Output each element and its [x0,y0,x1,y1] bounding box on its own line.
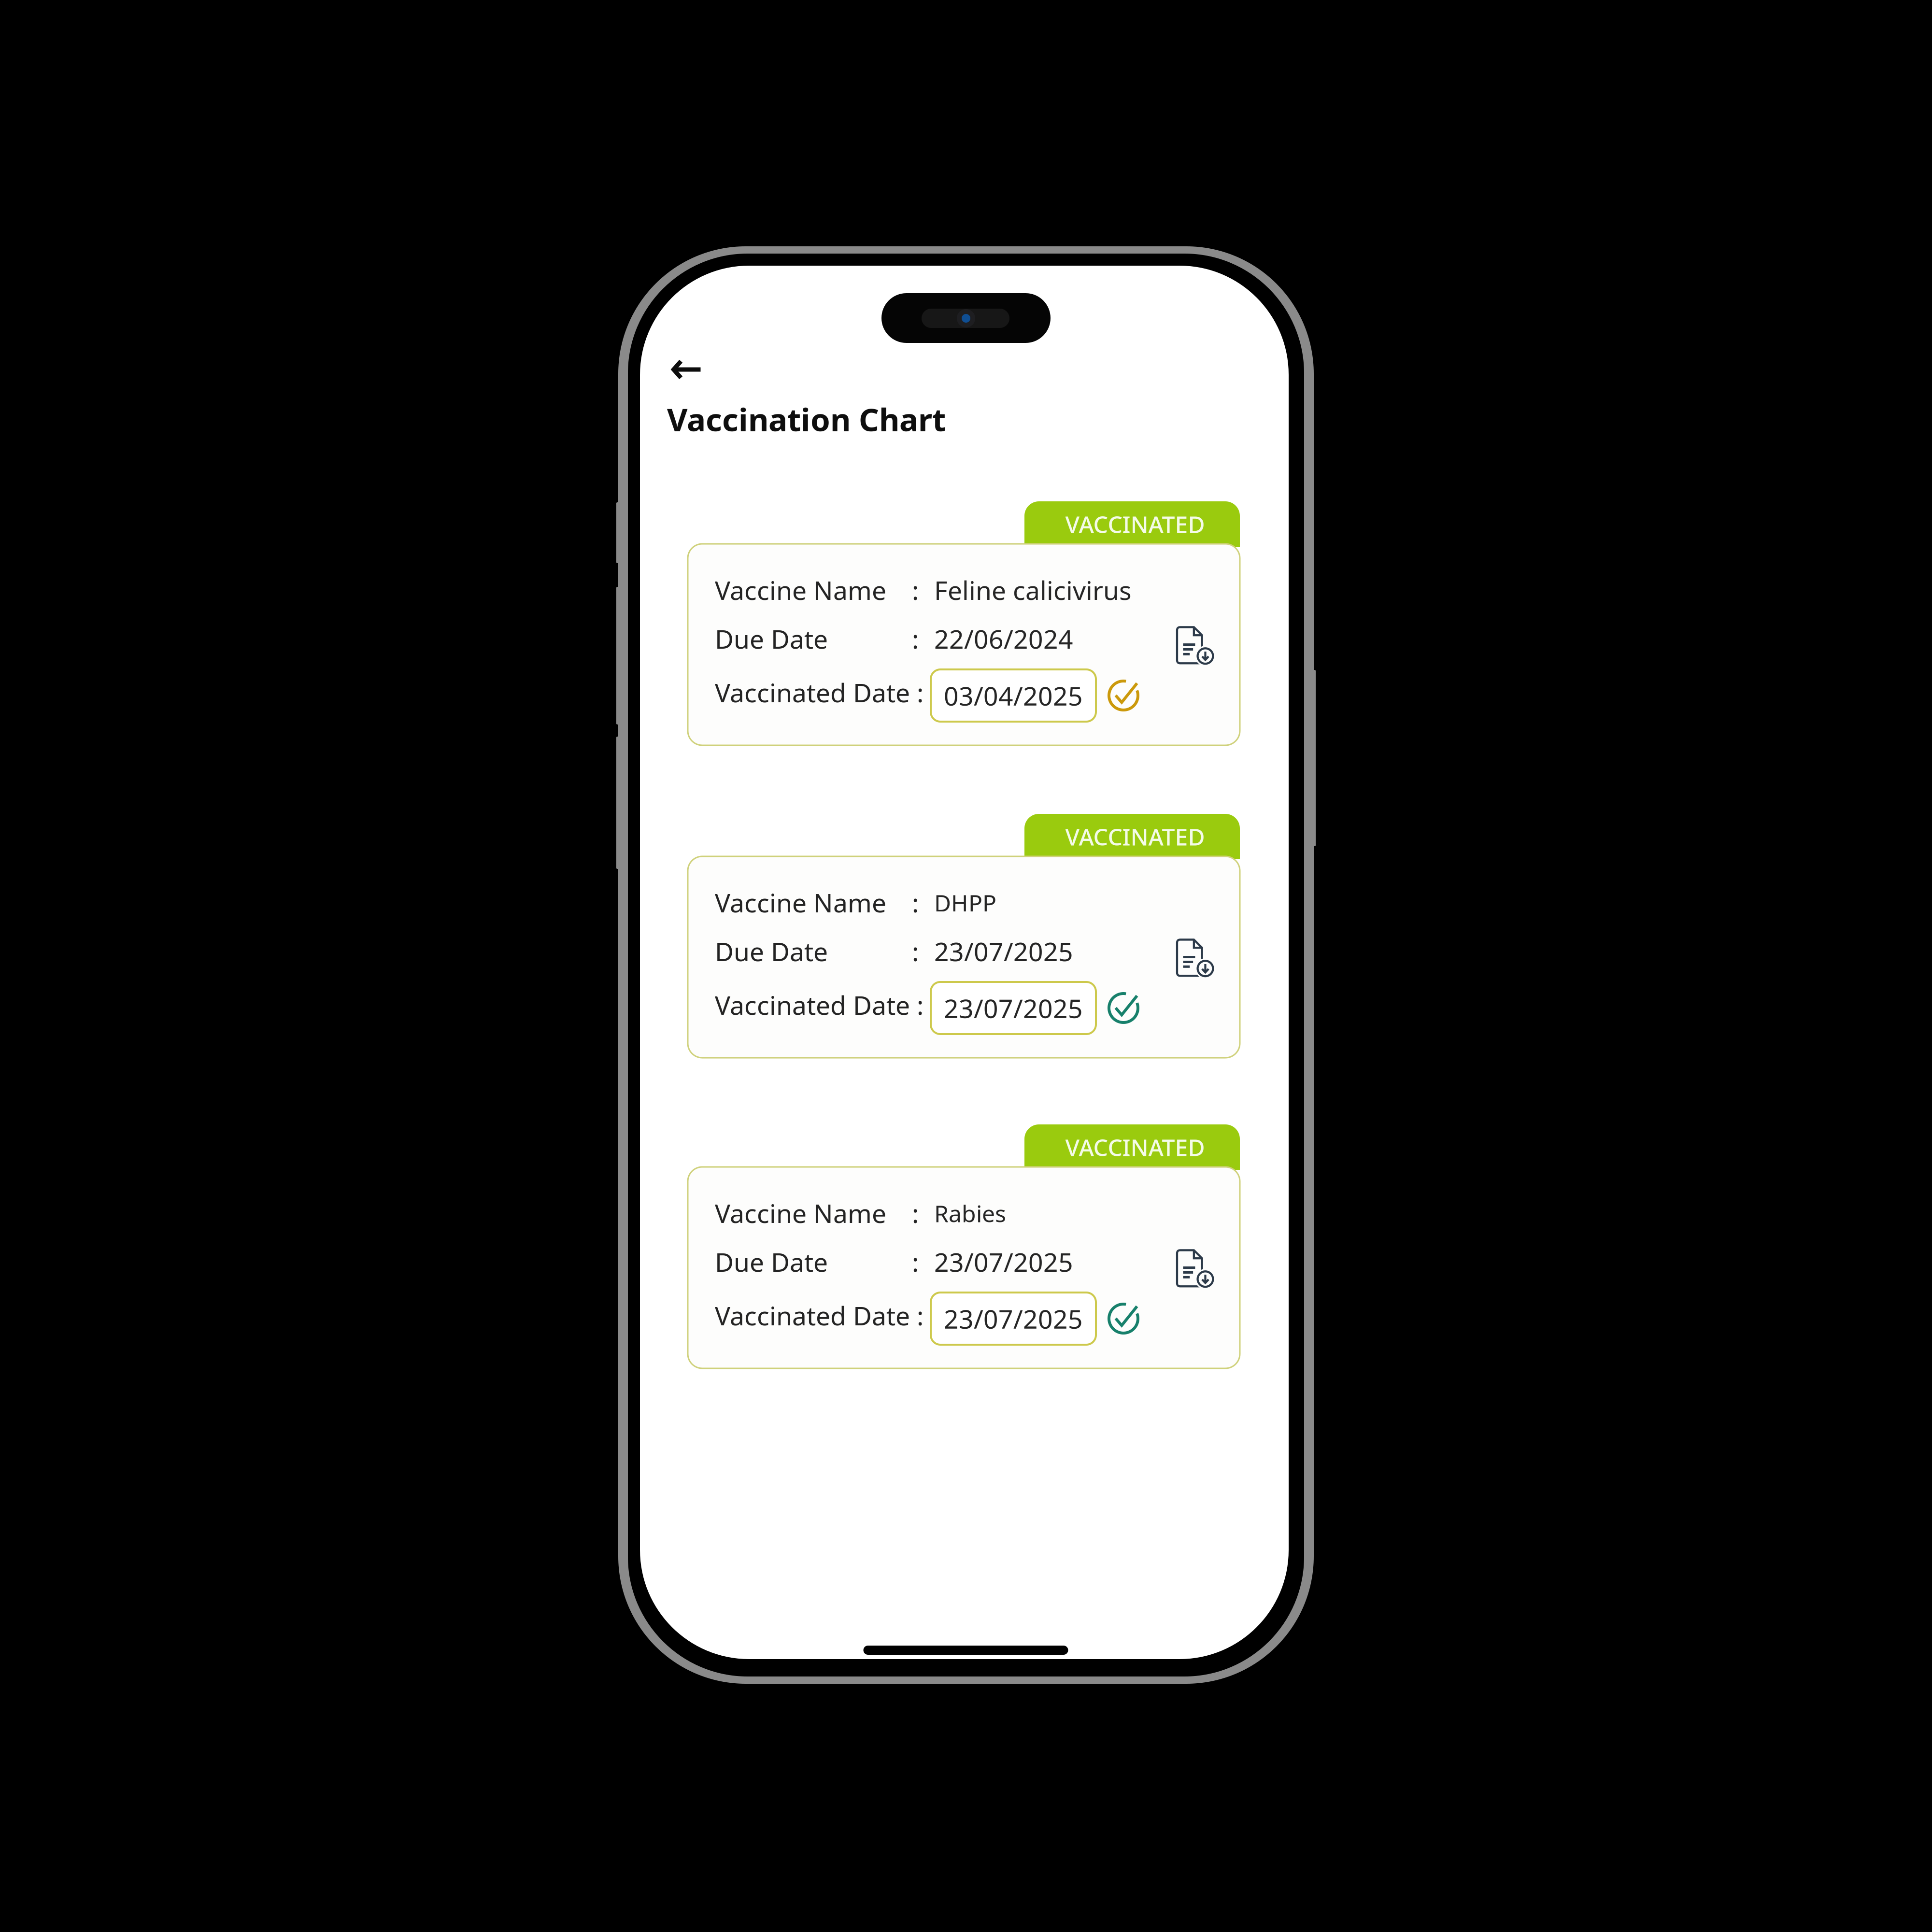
staticText: Feline calicivirus [934,573,1132,607]
staticText: DHPP [934,887,996,918]
staticText: 23/07/2025 [944,991,1083,1025]
staticText: Vaccinated Date : [715,675,923,709]
staticText: 22/06/2024 [934,622,1073,656]
button[interactable]: Download certificate [1167,617,1225,675]
staticText: : [912,934,919,968]
staticText: VACCINATED [1065,821,1205,852]
button[interactable]: Vaccine Name [688,1167,1240,1368]
staticText: : [912,885,919,920]
staticText: : [912,573,919,607]
staticText: 23/07/2025 [934,1245,1073,1279]
staticText: 03/04/2025 [944,678,1083,713]
button[interactable]: Vaccine Name [688,544,1240,745]
staticText: 23/07/2025 [934,934,1073,968]
staticText: 23/07/2025 [944,1301,1083,1336]
staticText: VACCINATED [1065,509,1205,539]
button[interactable]: Download certificate [1167,930,1225,988]
staticText: Due Date [715,934,828,968]
staticText: Rabies [934,1198,1006,1229]
staticText: Vaccinated Date : [715,988,923,1022]
button[interactable]: Download certificate [1167,1240,1225,1298]
staticText: : [912,1245,919,1279]
button[interactable]: Vaccine Name [688,856,1240,1058]
staticText: Vaccine Name [715,573,886,607]
staticText: Vaccination Chart [667,398,946,440]
button[interactable]: Back [659,338,712,382]
staticText: VACCINATED [1065,1132,1205,1162]
staticText: Vaccinated Date : [715,1298,923,1333]
staticText: Vaccine Name [715,885,886,920]
staticText: : [912,1196,919,1230]
staticText: Due Date [715,1245,828,1279]
staticText: : [912,622,919,656]
staticText: Due Date [715,622,828,656]
staticText: Vaccine Name [715,1196,886,1230]
